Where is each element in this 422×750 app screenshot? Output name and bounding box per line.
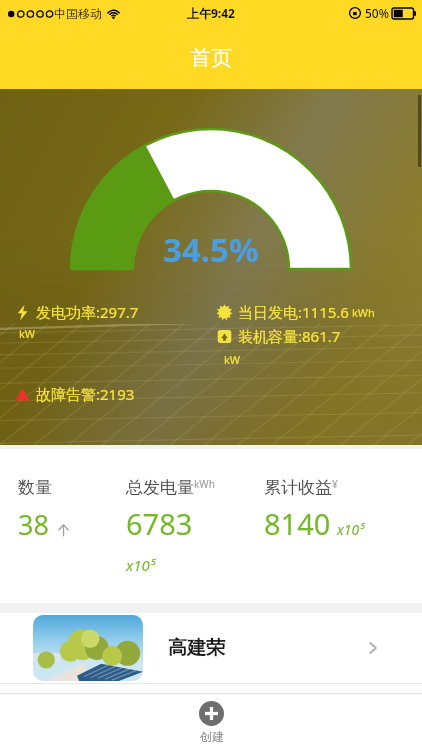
staticText: 故障告警:2193 [36, 384, 135, 404]
staticText: 6783 [126, 504, 193, 543]
staticText: 数量 [18, 477, 52, 498]
staticText: 34.5% [163, 227, 259, 272]
staticText: 创建 [200, 729, 224, 744]
button[interactable]: 创建 [173, 697, 250, 748]
staticText: ¥ [332, 477, 338, 491]
staticText: 总发电量 [126, 477, 194, 498]
staticText: kW [224, 352, 241, 367]
staticText: 高建荣 [168, 636, 225, 660]
staticText: kWh [194, 477, 215, 491]
staticText: 38 [18, 506, 49, 543]
staticText: 8140 [264, 504, 331, 543]
staticText: kW [19, 326, 36, 341]
staticText: 当日发电:1115.6 [238, 302, 349, 322]
staticText: 装机容量:861.7 [238, 326, 341, 346]
staticText: 上午9:42 [187, 5, 235, 21]
staticText: 发电功率:297.7 [36, 302, 139, 322]
staticText: 50% [365, 5, 389, 21]
button[interactable]: 高建荣 [0, 613, 422, 683]
staticText: kWh [352, 305, 375, 320]
staticText: 首页 [190, 45, 232, 71]
staticText: x10⁵ [337, 520, 365, 539]
staticText: 中国移动 [54, 6, 102, 21]
staticText: x10⁵ [126, 555, 156, 575]
staticText: 累计收益 [264, 477, 332, 498]
